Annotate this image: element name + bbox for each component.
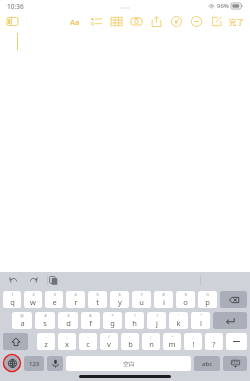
button[interactable]: 5 bbox=[88, 291, 107, 308]
staticText: / bbox=[108, 334, 110, 339]
button[interactable]: Backspace bbox=[220, 291, 247, 308]
staticText: & bbox=[89, 313, 92, 318]
button[interactable]: Compose bbox=[210, 15, 223, 28]
staticText: b bbox=[128, 339, 133, 349]
staticText: 3 bbox=[53, 292, 56, 297]
button[interactable]: $ bbox=[58, 312, 78, 329]
button[interactable]: Share bbox=[150, 15, 163, 28]
button[interactable]: Table bbox=[110, 15, 123, 28]
button[interactable]: ; bbox=[142, 333, 160, 350]
staticText: 123 bbox=[29, 360, 40, 368]
staticText: w bbox=[30, 297, 36, 307]
button[interactable]: Remove bbox=[190, 15, 203, 28]
button[interactable]: Camera bbox=[130, 15, 143, 28]
button[interactable]: # bbox=[35, 312, 55, 329]
staticText: 2 bbox=[32, 292, 35, 297]
button[interactable]: . bbox=[37, 333, 55, 350]
button[interactable]: @ bbox=[12, 312, 32, 329]
button[interactable]: Next keyboard bbox=[3, 354, 21, 372]
button[interactable]: . bbox=[205, 333, 223, 350]
button[interactable]: Shift bbox=[3, 333, 28, 350]
button[interactable]: " bbox=[191, 312, 210, 329]
button[interactable]: Hide keyboard bbox=[223, 356, 247, 371]
button[interactable]: , bbox=[184, 333, 202, 350]
button[interactable]: Paste bbox=[47, 274, 59, 286]
button[interactable]: Undo bbox=[7, 274, 19, 286]
staticText: . bbox=[213, 334, 215, 339]
staticText: l bbox=[200, 318, 202, 328]
button[interactable]: 空白 bbox=[66, 356, 191, 371]
staticText: y bbox=[118, 297, 122, 307]
staticText: g bbox=[110, 318, 115, 328]
staticText: 96% bbox=[217, 2, 229, 10]
button[interactable]: 2 bbox=[24, 291, 42, 308]
staticText: ' bbox=[178, 313, 179, 318]
staticText: 9 bbox=[184, 292, 187, 297]
button[interactable]: abc bbox=[194, 356, 220, 371]
staticText: x bbox=[65, 339, 69, 349]
button[interactable]: Return bbox=[213, 312, 247, 329]
staticText: 0 bbox=[206, 292, 209, 297]
staticText: ~ bbox=[171, 334, 174, 339]
button[interactable]: ( bbox=[125, 312, 144, 329]
staticText: ? bbox=[212, 339, 216, 349]
staticText: ; bbox=[150, 334, 152, 339]
button[interactable]: ) bbox=[147, 312, 166, 329]
button[interactable]: 8 bbox=[154, 291, 173, 308]
button[interactable]: ' bbox=[169, 312, 188, 329]
staticText: # bbox=[44, 313, 47, 318]
staticText: j bbox=[156, 318, 158, 328]
staticText: d bbox=[66, 318, 71, 328]
staticText: q bbox=[10, 297, 15, 307]
staticText: " bbox=[200, 313, 202, 318]
staticText: a bbox=[20, 318, 25, 328]
button[interactable]: 6 bbox=[110, 291, 129, 308]
staticText: o bbox=[183, 297, 188, 307]
button[interactable]: , bbox=[58, 333, 76, 350]
button[interactable]: 7 bbox=[132, 291, 151, 308]
button[interactable]: * bbox=[103, 312, 122, 329]
button[interactable]: 3 bbox=[45, 291, 63, 308]
button[interactable]: Aa bbox=[67, 15, 83, 29]
staticText: i bbox=[163, 297, 165, 307]
staticText: s bbox=[43, 318, 47, 328]
staticText: 4 bbox=[74, 292, 77, 297]
button[interactable]: & bbox=[81, 312, 100, 329]
staticText: u bbox=[139, 297, 144, 307]
staticText: , bbox=[66, 334, 68, 339]
staticText: k bbox=[176, 318, 181, 328]
button[interactable]: ~ bbox=[163, 333, 181, 350]
button[interactable]: Checklist bbox=[90, 15, 103, 28]
button[interactable]: / bbox=[100, 333, 118, 350]
staticText: ( bbox=[134, 313, 136, 318]
staticText: e bbox=[52, 297, 57, 307]
staticText: ) bbox=[156, 313, 158, 318]
staticText: $ bbox=[67, 313, 70, 318]
button[interactable]: 完了 bbox=[229, 15, 244, 29]
staticText: 5 bbox=[96, 292, 99, 297]
button[interactable]: Dash bbox=[226, 333, 247, 350]
staticText: * bbox=[111, 313, 114, 318]
staticText: Aa bbox=[70, 17, 80, 27]
button[interactable]: Redo bbox=[27, 274, 39, 286]
staticText: m bbox=[168, 339, 176, 349]
staticText: 空白 bbox=[123, 360, 135, 368]
button[interactable]: Dictate bbox=[47, 356, 63, 371]
staticText: v bbox=[107, 339, 111, 349]
button[interactable]: : bbox=[121, 333, 139, 350]
button[interactable]: Sidebar bbox=[6, 15, 19, 28]
staticText: c bbox=[86, 339, 90, 349]
staticText: 8 bbox=[162, 292, 165, 297]
staticText: h bbox=[132, 318, 137, 328]
staticText: 6 bbox=[118, 292, 121, 297]
button[interactable]: 9 bbox=[176, 291, 195, 308]
button[interactable]: 4 bbox=[66, 291, 85, 308]
button[interactable]: Markup bbox=[170, 15, 183, 28]
button[interactable]: 1 bbox=[3, 291, 21, 308]
button[interactable]: 123 bbox=[24, 356, 44, 371]
staticText: t bbox=[96, 297, 99, 307]
staticText: z bbox=[44, 339, 48, 349]
staticText: r bbox=[74, 297, 78, 307]
button[interactable]: 0 bbox=[198, 291, 217, 308]
button[interactable]: - bbox=[79, 333, 97, 350]
